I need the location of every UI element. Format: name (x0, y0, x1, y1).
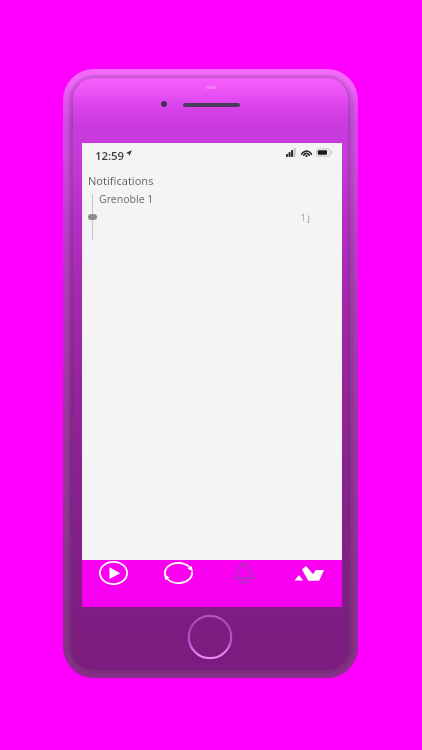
staticText: 12:59 (95, 148, 124, 164)
staticText: Notifications (88, 173, 154, 188)
staticText: Grenoble 1 (99, 192, 154, 206)
button[interactable]: Refresh (147, 560, 212, 607)
button[interactable]: Play (82, 560, 147, 607)
button[interactable]: Home (277, 560, 342, 607)
button[interactable]: Notifications (212, 560, 277, 607)
staticText: 1 j (301, 212, 310, 223)
